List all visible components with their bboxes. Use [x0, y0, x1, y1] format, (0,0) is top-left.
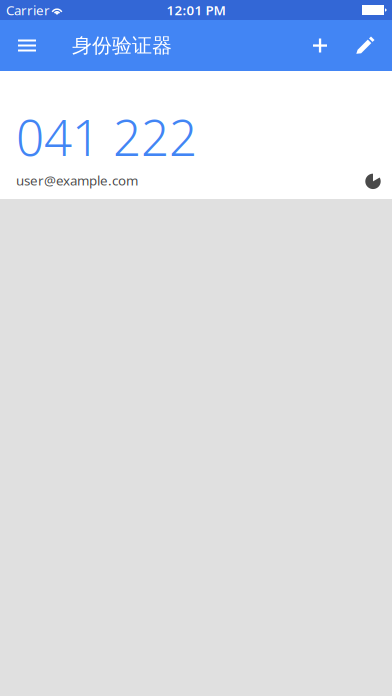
staticText: 041 222: [16, 104, 197, 169]
staticText: 身份验证器: [72, 33, 172, 58]
button[interactable]: Edit: [345, 20, 392, 71]
staticText: 12:01 PM: [166, 1, 225, 19]
button[interactable]: 身份验证器: [54, 20, 180, 71]
button[interactable]: Add account: [300, 20, 345, 71]
staticText: Carrier: [6, 1, 50, 19]
button[interactable]: Menu: [0, 20, 54, 71]
staticText: user@example.com: [16, 171, 138, 189]
button[interactable]: 041 222: [0, 71, 392, 199]
